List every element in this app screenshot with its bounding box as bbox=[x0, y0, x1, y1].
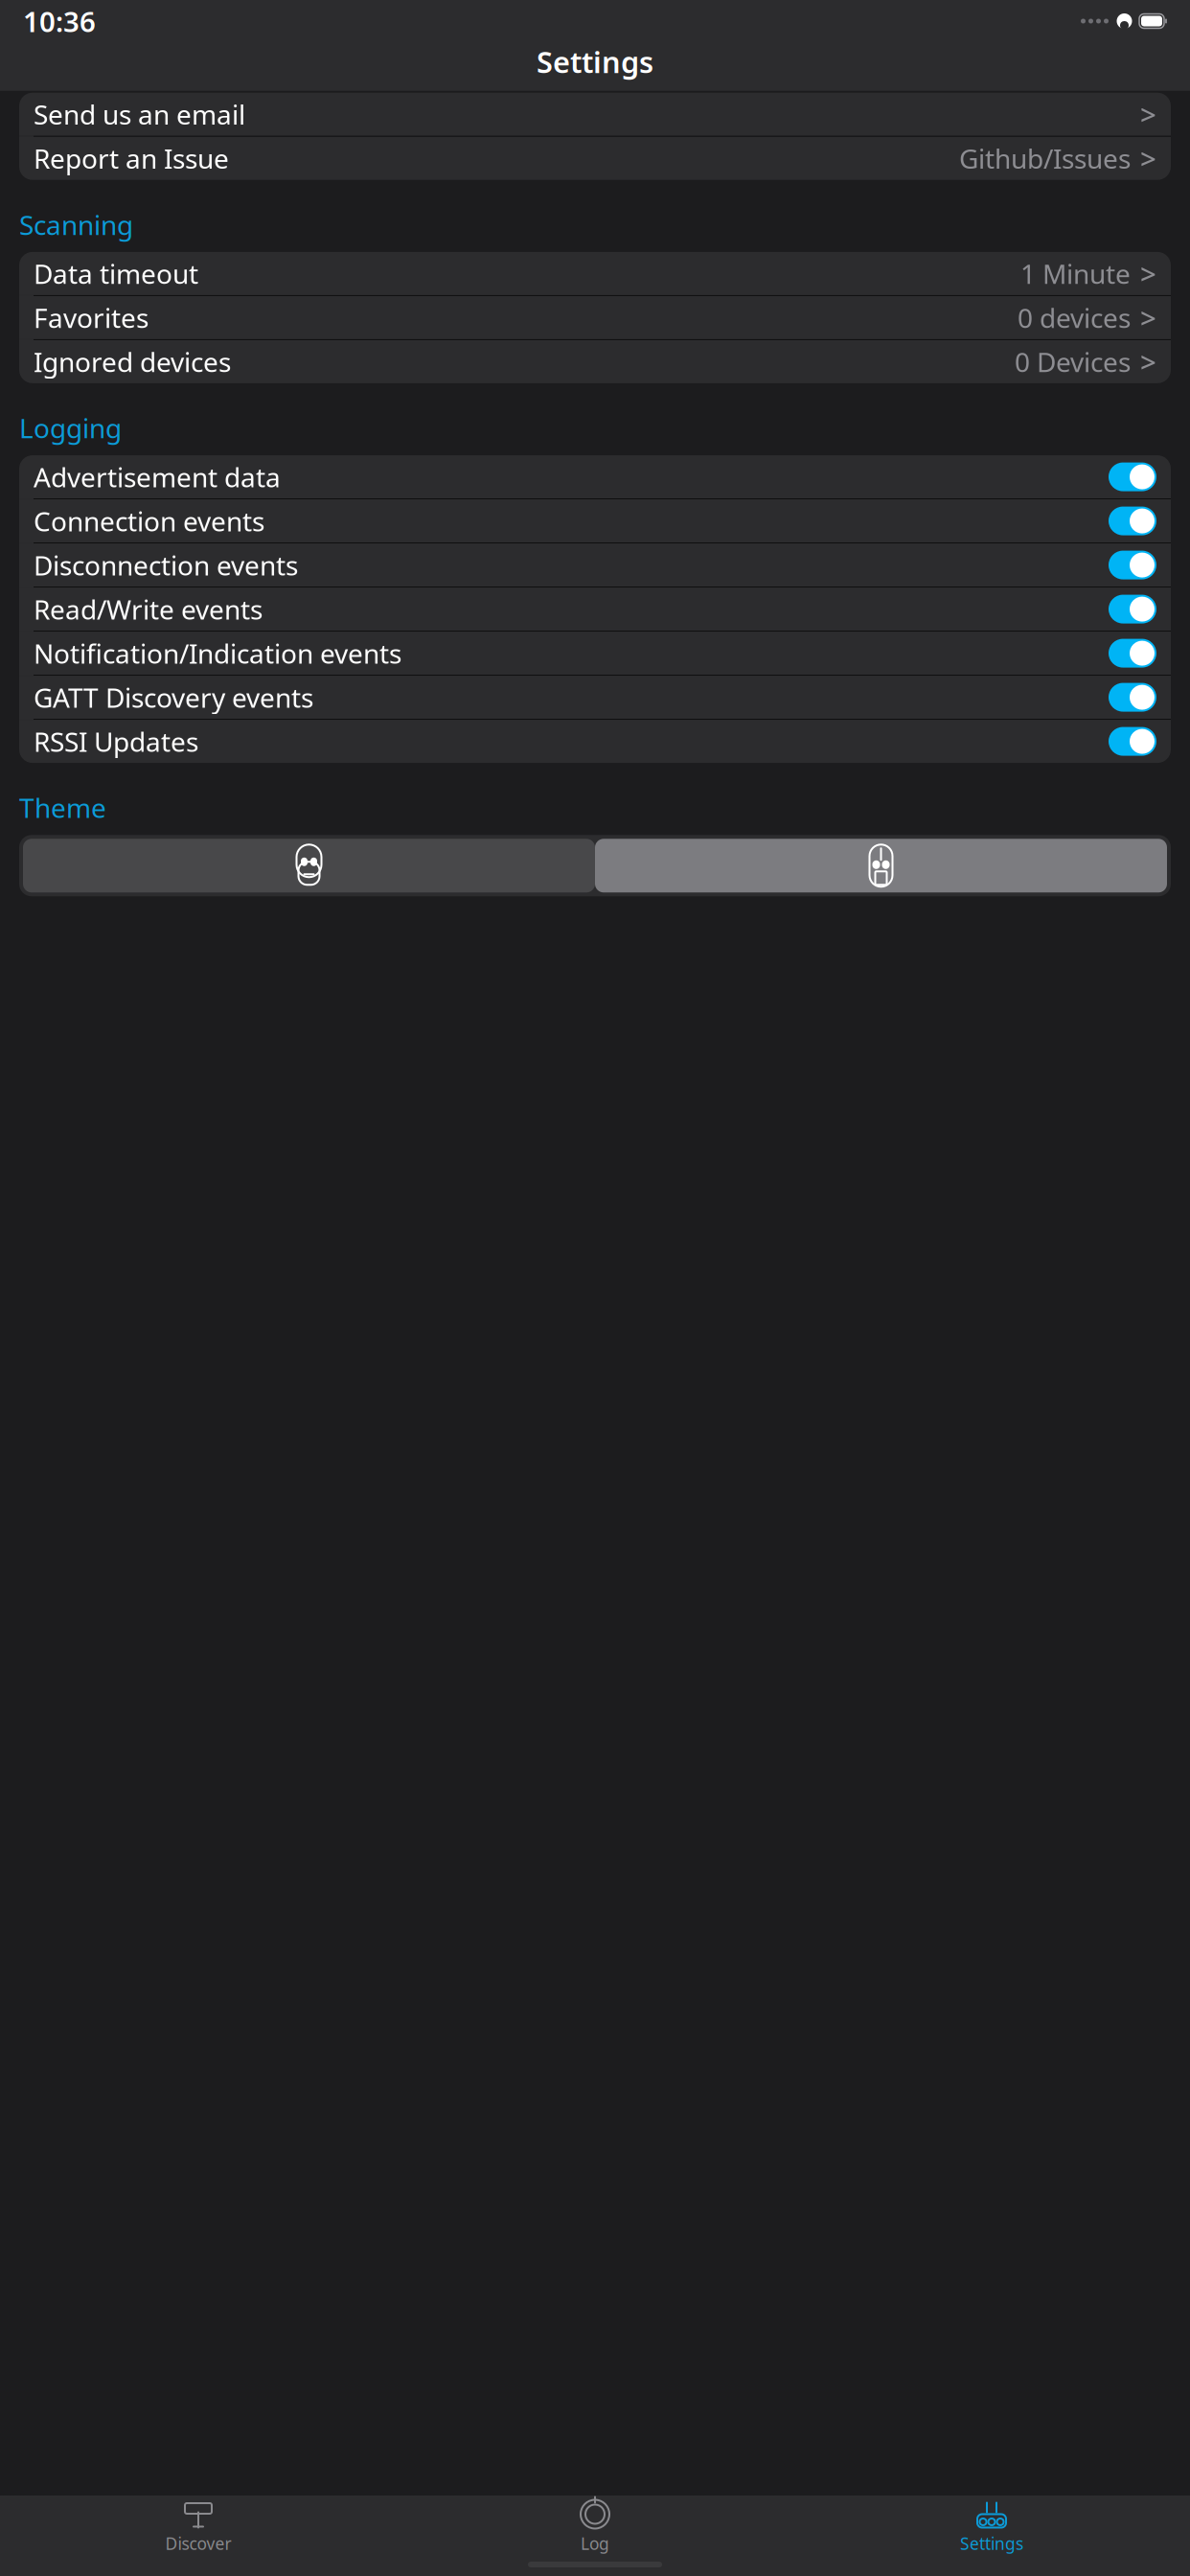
button[interactable]: Notification/Indication events bbox=[19, 632, 1171, 675]
button[interactable]: Log bbox=[397, 2492, 793, 2554]
staticText: 0 Devices bbox=[1015, 344, 1131, 379]
staticText: Send us an email bbox=[34, 96, 245, 132]
button[interactable]: Ignored devices bbox=[19, 340, 1171, 383]
staticText: > bbox=[1140, 96, 1156, 133]
button[interactable]: Settings bbox=[793, 2492, 1190, 2554]
staticText: RSSI Updates bbox=[34, 724, 198, 759]
staticText: Settings bbox=[960, 2532, 1023, 2554]
staticText: Advertisement data bbox=[34, 459, 281, 495]
button[interactable]: Dark theme bbox=[595, 839, 1167, 892]
button[interactable]: RSSI Updates bbox=[19, 720, 1171, 763]
staticText: Scanning bbox=[19, 207, 133, 242]
staticText: > bbox=[1140, 140, 1156, 177]
button[interactable]: Send us an email bbox=[19, 93, 1171, 136]
staticText: 0 devices bbox=[1018, 300, 1131, 335]
button[interactable]: GATT Discovery events bbox=[19, 676, 1171, 719]
staticText: GATT Discovery events bbox=[34, 679, 313, 715]
button[interactable]: Data timeout bbox=[19, 252, 1171, 295]
button[interactable]: Favorites bbox=[19, 296, 1171, 339]
staticText: Ignored devices bbox=[34, 344, 231, 379]
staticText: Disconnection events bbox=[34, 547, 298, 583]
staticText: Read/Write events bbox=[34, 591, 263, 627]
button[interactable]: Disconnection events bbox=[19, 543, 1171, 587]
button[interactable]: Report an Issue bbox=[19, 137, 1171, 180]
staticText: Notification/Indication events bbox=[34, 635, 401, 671]
button[interactable]: Connection events bbox=[19, 499, 1171, 543]
staticText: > bbox=[1140, 299, 1156, 336]
button[interactable]: Discover bbox=[0, 2492, 397, 2554]
staticText: Settings bbox=[537, 42, 653, 81]
staticText: 1 Minute bbox=[1020, 256, 1131, 291]
staticText: Logging bbox=[19, 410, 122, 446]
staticText: Report an Issue bbox=[34, 140, 229, 176]
staticText: Discover bbox=[165, 2532, 231, 2554]
staticText: > bbox=[1140, 343, 1156, 380]
staticText: > bbox=[1140, 255, 1156, 292]
staticText: Favorites bbox=[34, 300, 149, 335]
staticText: 10:36 bbox=[23, 2, 96, 40]
staticText: Connection events bbox=[34, 503, 264, 539]
button[interactable]: Light theme bbox=[23, 839, 595, 892]
button[interactable]: Advertisement data bbox=[19, 455, 1171, 498]
button[interactable]: Read/Write events bbox=[19, 588, 1171, 631]
staticText: Github/Issues bbox=[959, 140, 1131, 176]
staticText: Data timeout bbox=[34, 256, 198, 291]
staticText: Theme bbox=[19, 790, 106, 825]
staticText: Log bbox=[581, 2532, 609, 2554]
